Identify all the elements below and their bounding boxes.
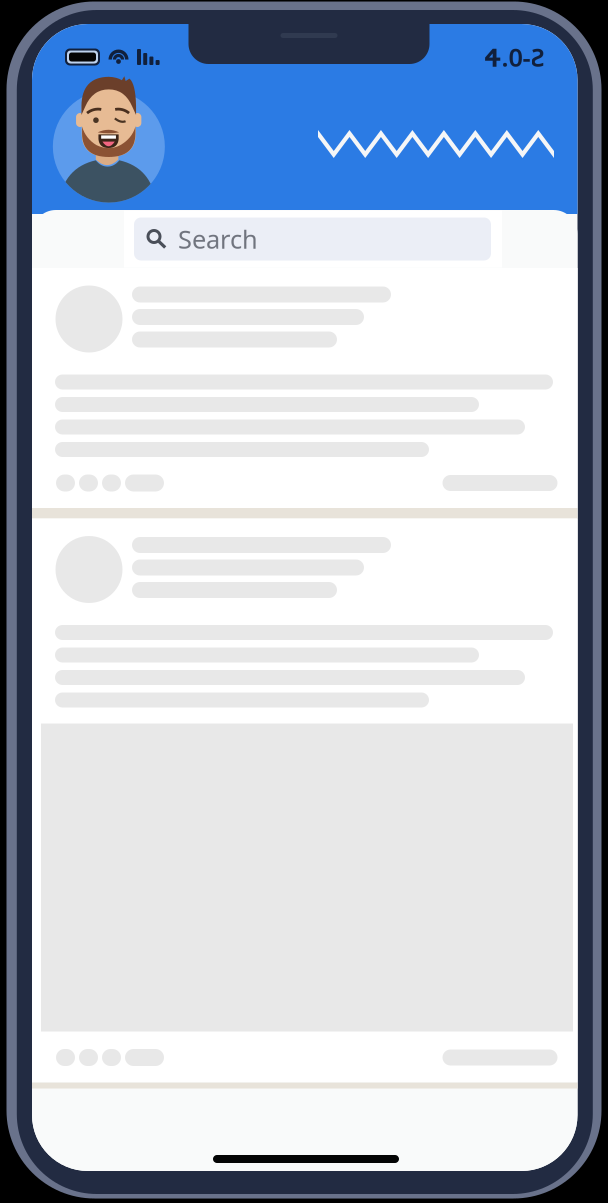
staticText: Search <box>178 222 258 256</box>
staticText: Ꮞ.0-Ƨ <box>484 40 544 74</box>
button[interactable]: Search <box>124 210 502 267</box>
